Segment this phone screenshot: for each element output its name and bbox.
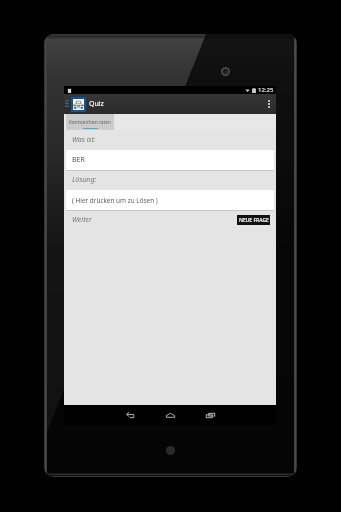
staticText: Weiter xyxy=(72,215,92,225)
button[interactable]: Home xyxy=(150,405,190,425)
button[interactable]: More options xyxy=(262,94,276,114)
staticText: 12:25 xyxy=(258,86,274,94)
staticText: Quiz xyxy=(89,99,104,109)
button[interactable]: ( Hier drücken um zu Lösen ) xyxy=(66,190,274,210)
staticText: Kennzeichen raten xyxy=(69,119,111,126)
button[interactable]: Back xyxy=(110,405,150,425)
button[interactable]: BER xyxy=(66,150,274,170)
button[interactable]: Recent apps xyxy=(190,405,230,425)
staticText: Was ist: xyxy=(72,135,96,145)
button[interactable]: NEUE FRAGE xyxy=(237,215,270,225)
staticText: NEUE FRAGE xyxy=(239,217,269,224)
staticText: BER xyxy=(72,155,85,165)
staticText: Lösung: xyxy=(72,175,97,185)
staticText: ( Hier drücken um zu Lösen ) xyxy=(72,196,158,205)
button[interactable]: Kennzeichen raten xyxy=(66,114,114,130)
